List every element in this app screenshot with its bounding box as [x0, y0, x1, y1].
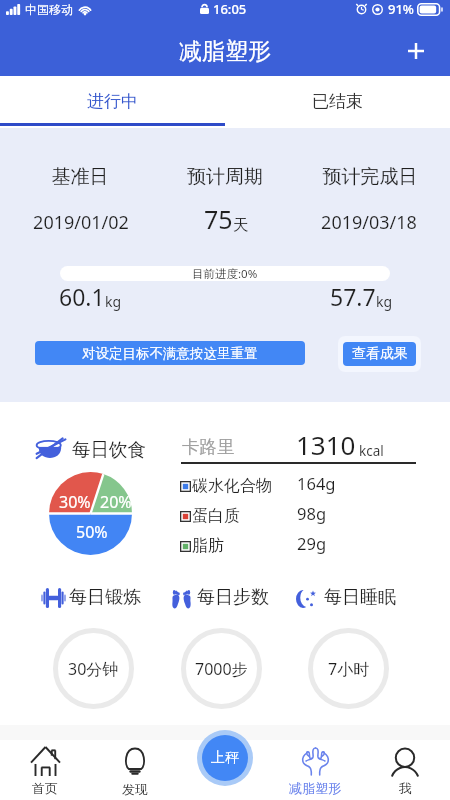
button[interactable]: 减脂塑形	[270, 740, 360, 800]
staticText: 查看成果	[352, 345, 408, 363]
staticText: 发现	[122, 781, 148, 797]
button[interactable]: 30分钟	[53, 628, 134, 709]
staticText: 20%	[100, 491, 132, 513]
staticText: 2019/01/02	[0, 210, 201, 235]
button[interactable]: Add	[403, 38, 429, 64]
staticText: 预计完成日	[250, 165, 450, 189]
staticText: kg	[105, 292, 122, 311]
staticText: 75	[204, 202, 233, 236]
staticText: 中国移动	[25, 2, 73, 17]
staticText: 碳水化合物	[192, 476, 272, 496]
staticText: 7000步	[195, 658, 248, 680]
staticText: 2019/03/18	[249, 210, 450, 235]
staticText: 上秤	[211, 749, 239, 767]
staticText: kcal	[359, 442, 384, 460]
staticText: 每日步数	[197, 586, 269, 609]
button[interactable]: 上秤	[197, 730, 253, 786]
staticText: 29g	[297, 532, 327, 554]
staticText: 1310	[296, 427, 356, 462]
button[interactable]: 已结束	[225, 76, 450, 126]
staticText: 7小时	[328, 658, 370, 680]
staticText: 每日锻炼	[69, 586, 141, 609]
staticText: kg	[376, 292, 393, 311]
staticText: 对设定目标不满意按这里重置	[82, 345, 258, 362]
staticText: 蛋白质	[192, 506, 240, 526]
button[interactable]: 查看成果	[338, 336, 421, 372]
button[interactable]: 首页	[0, 740, 90, 800]
staticText: 50%	[76, 521, 108, 543]
button[interactable]: 每日睡眠	[296, 586, 396, 609]
button[interactable]: 发现	[90, 740, 180, 800]
staticText: 我	[399, 780, 412, 796]
staticText: 进行中	[87, 91, 138, 112]
staticText: 30%	[59, 491, 91, 513]
staticText: 57.7	[330, 281, 376, 312]
staticText: 基准日	[0, 165, 200, 189]
staticText: 每日睡眠	[324, 586, 396, 609]
staticText: 减脂塑形	[179, 37, 271, 66]
staticText: 目前进度:0%	[192, 266, 258, 281]
staticText: 脂肪	[192, 536, 224, 556]
staticText: 98g	[297, 502, 327, 524]
staticText: 卡路里	[182, 436, 235, 458]
button[interactable]: 进行中	[0, 76, 225, 126]
button[interactable]: 每日步数	[169, 586, 269, 609]
staticText: 16:05	[213, 0, 247, 18]
staticText: 预计周期	[105, 165, 345, 189]
staticText: 每日饮食	[72, 438, 146, 461]
staticText: 164g	[297, 472, 336, 494]
staticText: 减脂塑形	[289, 780, 341, 796]
staticText: 91%	[388, 0, 414, 18]
button[interactable]: 对设定目标不满意按这里重置	[35, 341, 305, 365]
button[interactable]: 7小时	[308, 628, 389, 709]
staticText: 30分钟	[68, 658, 119, 680]
staticText: 首页	[32, 780, 58, 796]
staticText: 已结束	[312, 91, 363, 112]
button[interactable]: 我	[360, 740, 450, 800]
staticText: 60.1	[59, 281, 105, 312]
staticText: 天	[233, 215, 249, 235]
button[interactable]: 每日锻炼	[41, 586, 141, 609]
button[interactable]: 7000步	[181, 628, 262, 709]
